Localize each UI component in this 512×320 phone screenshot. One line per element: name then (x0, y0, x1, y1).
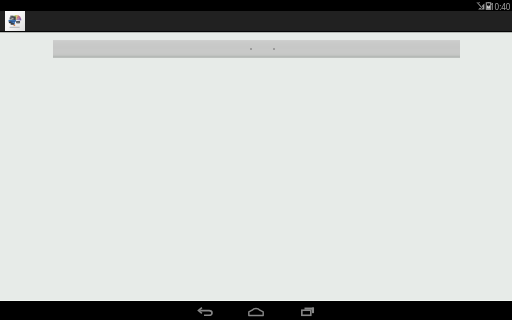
button[interactable]: Back (180, 301, 230, 320)
button[interactable]: Home (231, 301, 281, 320)
button[interactable]: Recent apps (283, 301, 333, 320)
button[interactable] (53, 40, 460, 58)
staticText: 10:40 (490, 1, 511, 12)
button[interactable]: App icon (5, 11, 25, 31)
